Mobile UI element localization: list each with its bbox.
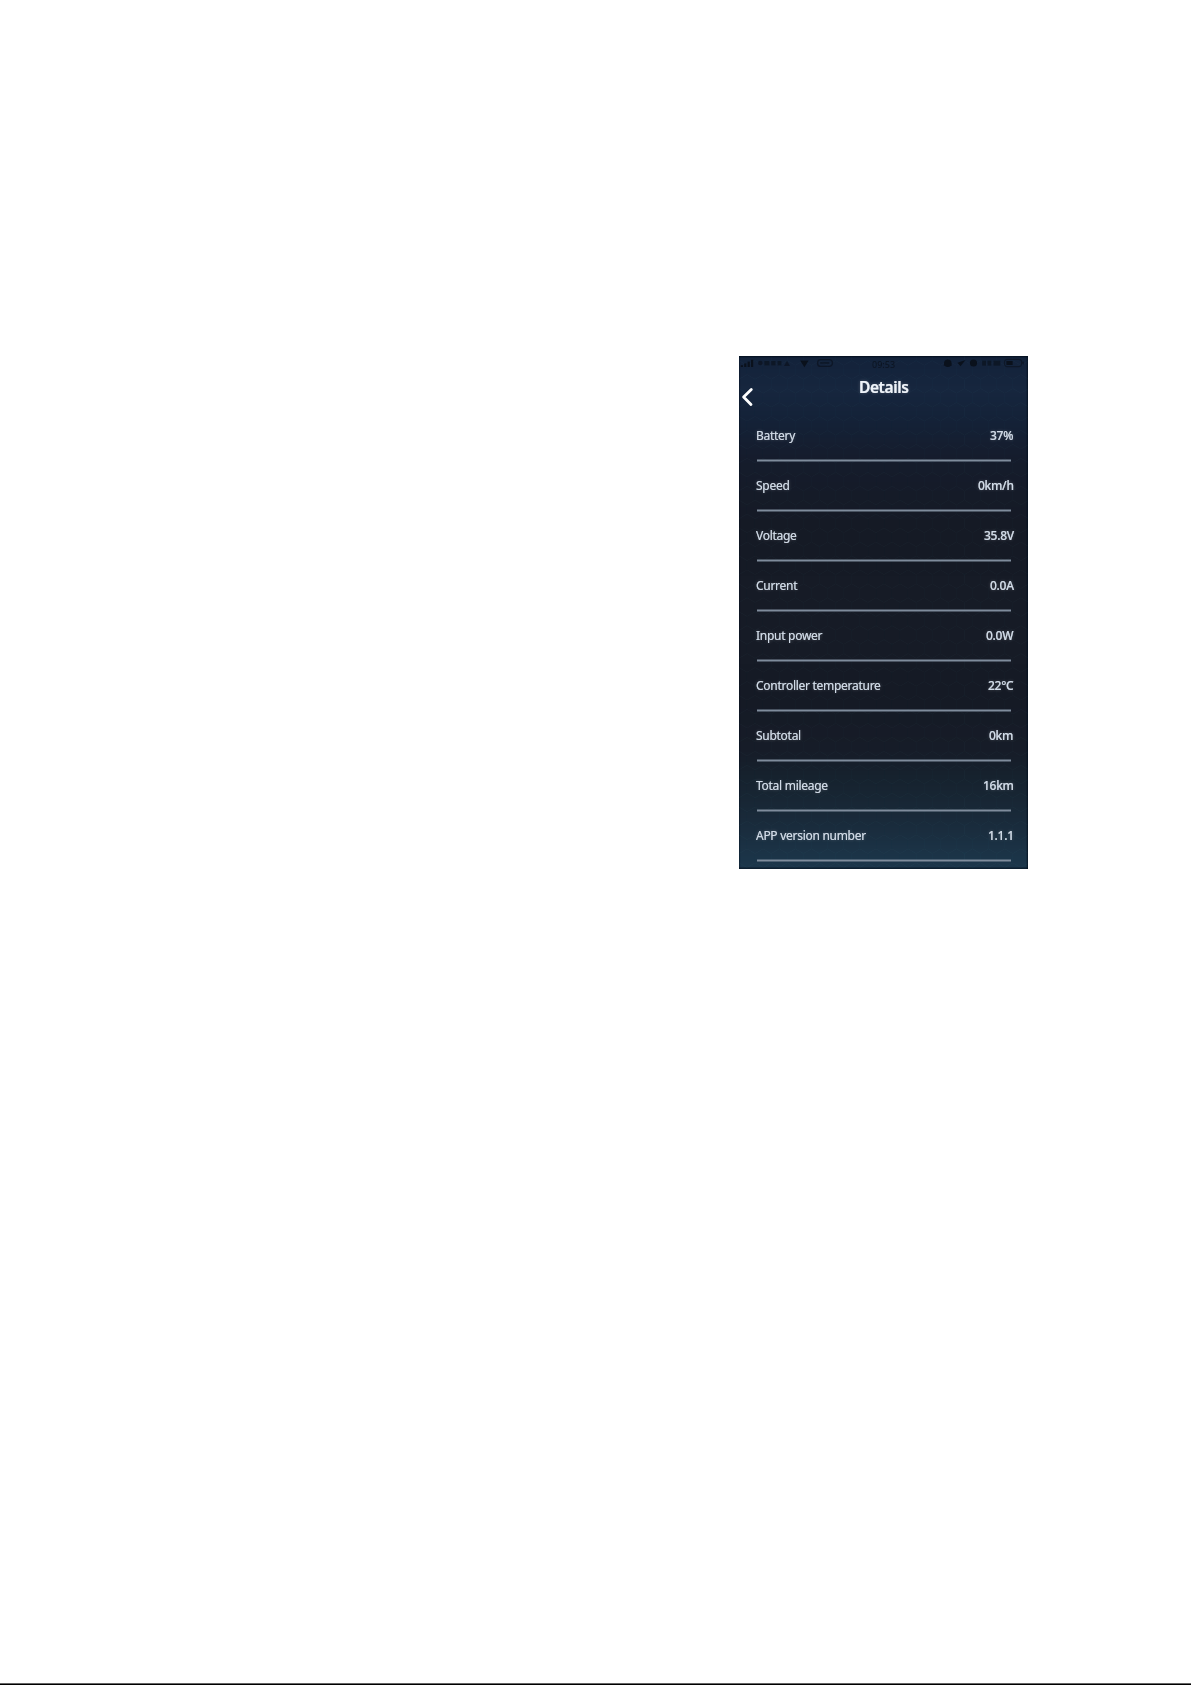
staticText: 16km — [983, 777, 1014, 793]
button[interactable]: Total mileage — [739, 761, 1028, 811]
staticText: 09:53 — [872, 358, 896, 370]
button[interactable]: Voltage — [739, 511, 1028, 561]
button[interactable]: Back — [739, 381, 765, 409]
staticText: Total mileage — [756, 777, 828, 793]
button[interactable]: Subtotal — [739, 711, 1028, 761]
staticText: 0km — [989, 727, 1014, 743]
staticText: Current — [756, 577, 798, 593]
button[interactable]: Controller temperature — [739, 661, 1028, 711]
staticText: 22°C — [988, 677, 1014, 693]
staticText: 1.1.1 — [988, 827, 1014, 843]
button[interactable]: Current — [739, 561, 1028, 611]
staticText: 37% — [990, 427, 1014, 443]
button[interactable]: Speed — [739, 461, 1028, 511]
staticText: APP version number — [756, 827, 866, 843]
staticText: 35.8V — [984, 527, 1014, 543]
button[interactable]: APP version number — [739, 811, 1028, 861]
staticText: Subtotal — [756, 727, 801, 743]
staticText: Controller temperature — [756, 677, 881, 693]
staticText: Battery — [756, 427, 796, 443]
staticText: Details — [859, 376, 909, 397]
staticText: Voltage — [756, 527, 797, 543]
staticText: Speed — [756, 477, 790, 493]
staticText: 0.0A — [990, 577, 1014, 593]
staticText: 0.0W — [986, 627, 1014, 643]
staticText: 0km/h — [978, 477, 1014, 493]
button[interactable]: Input power — [739, 611, 1028, 661]
staticText: Input power — [756, 627, 823, 643]
button[interactable]: Battery — [739, 411, 1028, 461]
